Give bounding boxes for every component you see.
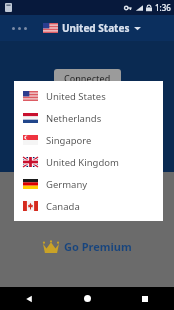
button[interactable]: Go Premium xyxy=(37,236,138,257)
staticText: 1:36 xyxy=(155,2,171,13)
button[interactable]: United Kingdom xyxy=(14,151,163,173)
button[interactable]: United States xyxy=(41,19,143,37)
button[interactable]: Singapore xyxy=(14,129,163,151)
staticText: United States xyxy=(46,90,106,103)
button[interactable]: Netherlands xyxy=(14,107,163,129)
staticText: United Kingdom xyxy=(46,156,119,169)
staticText: United States xyxy=(62,21,130,35)
button[interactable]: Back xyxy=(0,287,58,310)
button[interactable]: Connected xyxy=(54,69,121,87)
button[interactable]: Canada xyxy=(14,195,163,217)
button[interactable]: Germany xyxy=(14,173,163,195)
button[interactable]: Home xyxy=(58,287,116,310)
staticText: Netherlands xyxy=(46,112,102,125)
button[interactable]: More options xyxy=(8,23,31,34)
staticText: Connected xyxy=(64,72,111,84)
button[interactable]: Recent apps xyxy=(116,287,174,310)
button[interactable]: United States xyxy=(14,85,163,107)
staticText: Canada xyxy=(46,200,80,213)
staticText: Go Premium xyxy=(64,239,132,254)
staticText: Germany xyxy=(46,178,88,191)
button[interactable]: VPN toggle xyxy=(64,191,110,217)
staticText: Singapore xyxy=(46,134,92,147)
